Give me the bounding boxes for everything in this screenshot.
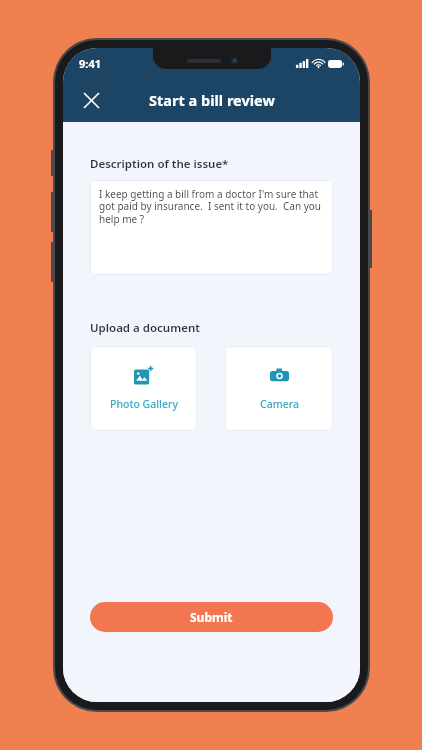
staticText: Camera [260, 397, 299, 411]
staticText: Submit [190, 609, 233, 625]
button[interactable]: Close [71, 80, 111, 120]
button[interactable]: I keep getting a bill from a doctor I'm … [90, 180, 333, 275]
button[interactable]: Camera [225, 346, 333, 431]
staticText: 9:41 [79, 56, 101, 71]
staticText: I keep getting a bill from a doctor I'm … [99, 187, 324, 226]
staticText: Photo Gallery [110, 397, 178, 411]
button[interactable]: Photo Gallery [90, 346, 197, 431]
staticText: Start a bill review [149, 90, 275, 110]
staticText: Upload a document [90, 320, 200, 336]
staticText: Description of the issue* [90, 156, 229, 172]
button[interactable]: Submit [90, 602, 333, 632]
